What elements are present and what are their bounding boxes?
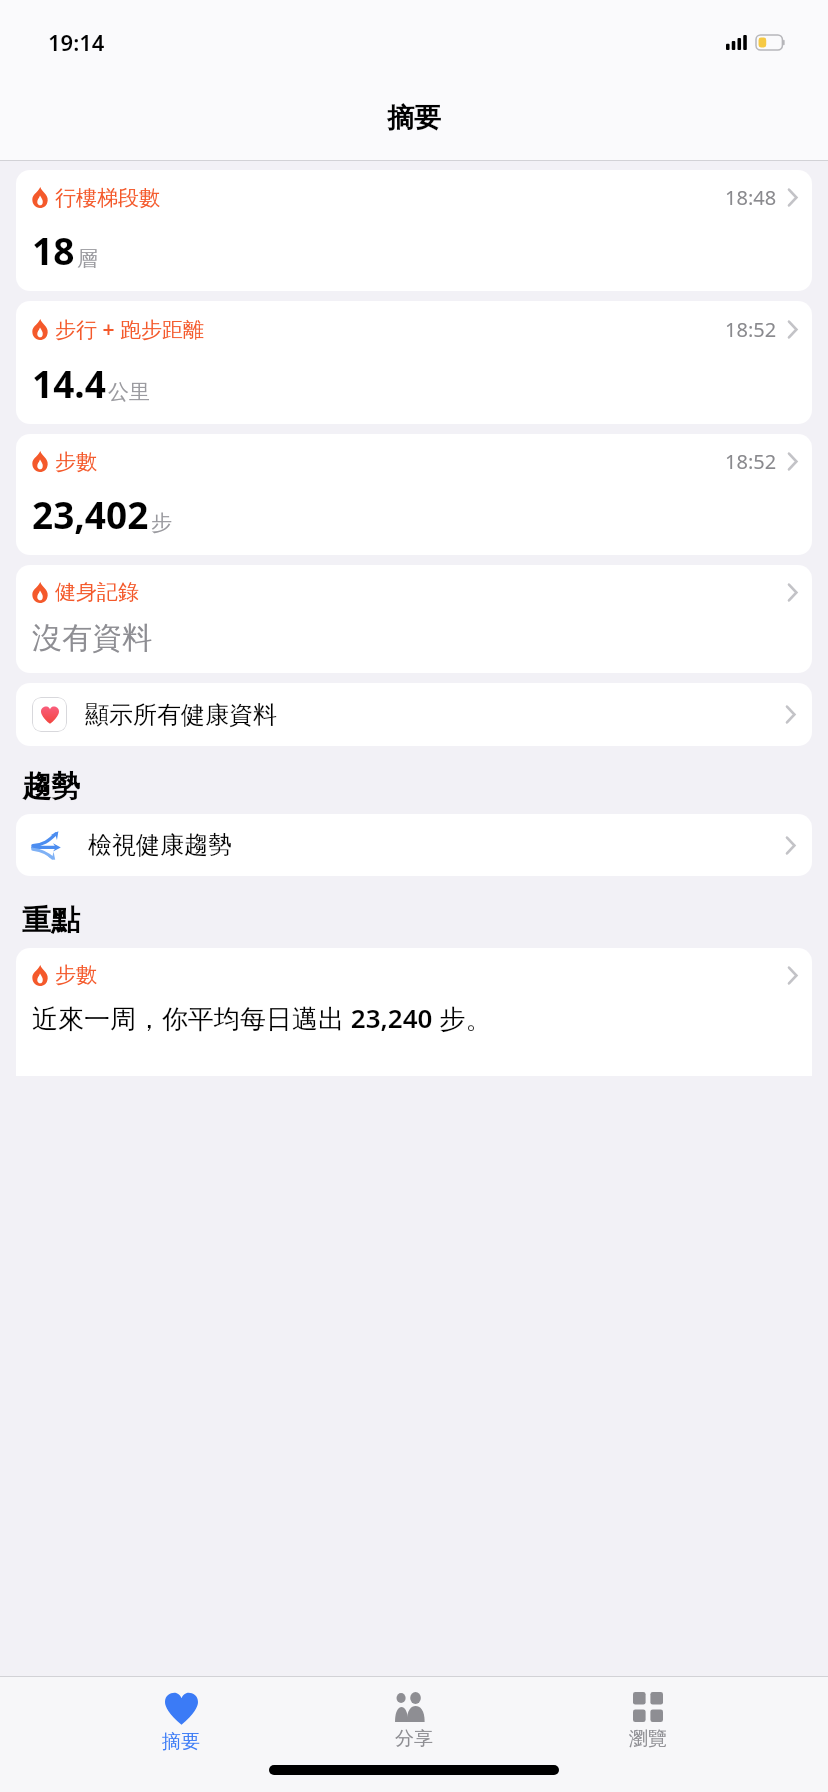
staticText: 檢視健康趨勢 xyxy=(88,830,232,860)
other: Health trends xyxy=(32,830,72,860)
staticText: 摘要 xyxy=(162,1730,200,1754)
other: Browse xyxy=(633,1692,663,1722)
staticText: 健身記錄 xyxy=(55,579,139,605)
other: Activity xyxy=(32,319,48,340)
button[interactable]: Activity xyxy=(16,301,812,424)
staticText: 沒有資料 xyxy=(32,619,152,657)
staticText: 19:14 xyxy=(48,27,105,57)
staticText: 18 xyxy=(32,225,75,275)
staticText: 顯示所有健康資料 xyxy=(85,700,277,730)
staticText: 趨勢 xyxy=(22,768,80,805)
staticText: 18:52 xyxy=(725,448,777,475)
button[interactable]: Activity xyxy=(16,565,812,673)
other: Activity xyxy=(32,965,48,986)
staticText: 步數 xyxy=(55,962,97,988)
staticText: 公里 xyxy=(108,379,150,405)
other: Heart xyxy=(165,1692,198,1725)
button[interactable]: Heart xyxy=(16,683,812,746)
staticText: 近來一周，你平均每日邁出 23,240 步。 xyxy=(32,1000,492,1036)
other: Activity xyxy=(32,582,48,603)
staticText: 步數 xyxy=(55,449,97,475)
other: Activity xyxy=(32,451,48,472)
staticText: 步 xyxy=(151,510,172,536)
button[interactable]: Activity xyxy=(16,948,812,1076)
staticText: 步行 + 跑步距離 xyxy=(55,315,204,344)
staticText: 重點 xyxy=(22,902,80,939)
button[interactable]: Heart xyxy=(128,1688,234,1758)
staticText: 瀏覽 xyxy=(629,1727,667,1751)
button[interactable]: Browse xyxy=(595,1688,701,1755)
other: Heart xyxy=(41,706,59,724)
button[interactable]: Health trends xyxy=(16,814,812,876)
button[interactable]: Activity xyxy=(16,170,812,291)
other: Activity xyxy=(32,187,48,208)
staticText: 層 xyxy=(77,246,98,272)
staticText: 行樓梯段數 xyxy=(55,185,160,211)
staticText: 分享 xyxy=(395,1727,433,1751)
staticText: 23,402 xyxy=(32,489,149,539)
other: Sharing xyxy=(395,1692,433,1722)
button[interactable]: Sharing xyxy=(361,1688,467,1755)
button[interactable]: Activity xyxy=(16,434,812,555)
staticText: 摘要 xyxy=(387,101,441,135)
staticText: 18:48 xyxy=(725,184,777,211)
staticText: 18:52 xyxy=(725,316,777,343)
staticText: 14.4 xyxy=(32,358,106,408)
